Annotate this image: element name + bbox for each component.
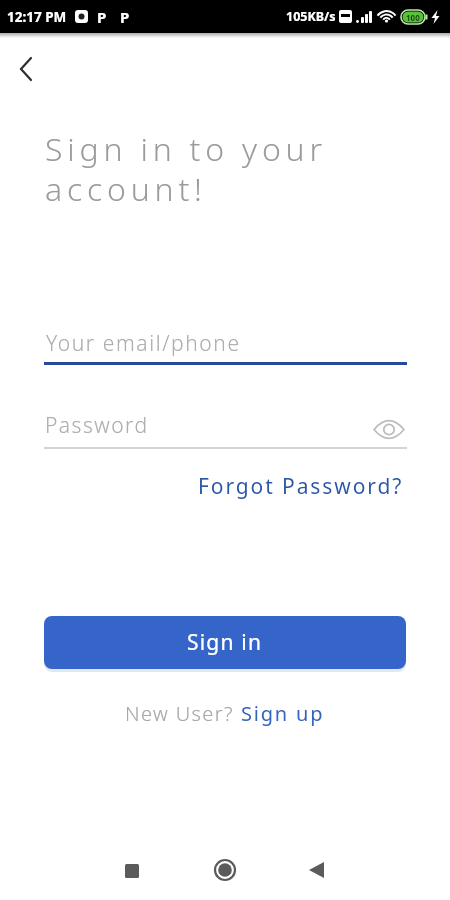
- staticText: Sign up: [241, 700, 325, 727]
- button[interactable]: [296, 850, 336, 890]
- button[interactable]: [5, 48, 47, 90]
- button[interactable]: [44, 406, 364, 448]
- staticText: Forgot Password?: [198, 472, 404, 501]
- staticText: Password: [45, 411, 149, 440]
- button[interactable]: [205, 850, 245, 890]
- staticText: Sign in to your account!: [45, 127, 327, 211]
- staticText: Sign in: [187, 628, 263, 657]
- button[interactable]: Forgot Password?: [198, 472, 404, 501]
- staticText: New User?: [125, 700, 241, 727]
- staticText: Your email/phone: [46, 329, 241, 358]
- button[interactable]: Sign up: [241, 700, 325, 727]
- staticText: 12:17 PM: [7, 8, 67, 26]
- button[interactable]: [112, 851, 152, 891]
- staticText: 100: [406, 12, 420, 23]
- staticText: P: [97, 7, 107, 27]
- button[interactable]: [44, 323, 407, 365]
- staticText: 105KB/s: [286, 8, 336, 25]
- staticText: P: [120, 7, 130, 27]
- button[interactable]: Sign in: [44, 616, 406, 669]
- button[interactable]: [370, 414, 408, 444]
